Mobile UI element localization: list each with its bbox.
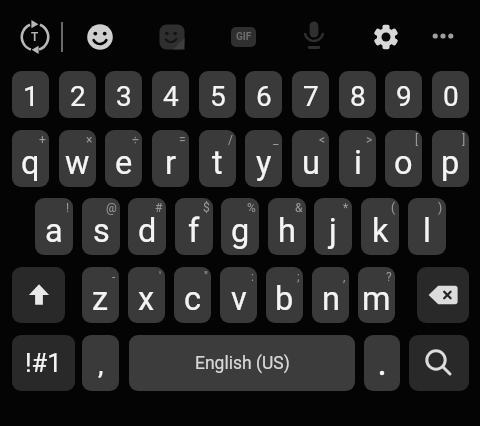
staticText: 3 [116, 80, 132, 113]
staticText: ; [297, 270, 300, 284]
staticText: n [322, 280, 340, 318]
staticText: l [423, 212, 431, 250]
button[interactable]: u [292, 130, 329, 187]
staticText: @ [106, 201, 117, 215]
staticText: f [188, 212, 200, 250]
button[interactable]: g [221, 198, 259, 255]
staticText: t [212, 144, 223, 182]
button[interactable] [80, 17, 120, 57]
staticText: / [228, 133, 233, 147]
button[interactable]: 6 [245, 71, 282, 118]
staticText: i [354, 144, 362, 182]
button[interactable] [366, 17, 406, 57]
button[interactable]: z [82, 267, 119, 323]
button[interactable]: r [152, 130, 189, 187]
staticText: m [362, 280, 391, 318]
button[interactable]: h [268, 198, 306, 255]
button[interactable]: n [312, 267, 349, 323]
button[interactable]: s [82, 198, 120, 255]
button[interactable] [417, 267, 469, 323]
button[interactable]: a [35, 198, 73, 255]
staticText: b [275, 280, 294, 318]
staticText: 8 [350, 80, 366, 113]
button[interactable]: m [358, 267, 395, 323]
staticText: e [115, 144, 133, 182]
staticText: x [138, 280, 155, 318]
staticText: ! [66, 201, 70, 215]
button[interactable]: y [245, 130, 282, 187]
button[interactable]: f [175, 198, 213, 255]
button[interactable]: p [432, 130, 469, 187]
staticText: > [366, 133, 373, 147]
staticText: 5 [210, 80, 226, 113]
button[interactable]: !#1 [12, 335, 75, 391]
staticText: p [441, 144, 460, 182]
button[interactable]: v [220, 267, 257, 323]
staticText: * [343, 201, 349, 215]
staticText: 6 [256, 80, 272, 113]
staticText: = [179, 133, 186, 147]
staticText: 4 [163, 80, 179, 113]
button[interactable]: 3 [105, 71, 142, 118]
button[interactable] [409, 335, 469, 391]
staticText: ÷ [132, 133, 139, 147]
button[interactable]: x [128, 267, 165, 323]
staticText: & [295, 201, 303, 215]
staticText: 0 [443, 80, 459, 113]
button[interactable]: , [82, 335, 119, 391]
staticText: English (US) [195, 353, 290, 374]
staticText: : [251, 270, 254, 284]
staticText: o [394, 144, 413, 182]
button[interactable]: b [266, 267, 303, 323]
button[interactable] [152, 17, 192, 57]
staticText: q [21, 144, 40, 182]
button[interactable] [423, 16, 463, 56]
staticText: _ [273, 133, 279, 147]
button[interactable] [12, 267, 65, 323]
button[interactable]: 5 [199, 71, 236, 118]
button[interactable]: 1 [12, 71, 49, 118]
button[interactable]: k [361, 198, 399, 255]
button[interactable]: i [339, 130, 376, 187]
staticText: ' [159, 270, 162, 284]
staticText: g [231, 212, 250, 250]
button[interactable]: 8 [339, 71, 376, 118]
staticText: [ [415, 133, 419, 147]
button[interactable]: j [314, 198, 352, 255]
button[interactable]: T [15, 17, 55, 57]
button[interactable]: 7 [292, 71, 329, 118]
staticText: < [319, 133, 326, 147]
button[interactable]: w [59, 130, 96, 187]
button[interactable]: o [385, 130, 422, 187]
button[interactable]: 9 [385, 71, 422, 118]
button[interactable]: l [408, 198, 446, 255]
staticText: y [256, 144, 272, 182]
button[interactable]: 2 [59, 71, 96, 118]
staticText: + [39, 133, 46, 147]
button[interactable]: e [105, 130, 142, 187]
button[interactable]: 4 [152, 71, 189, 118]
staticText: ( [391, 201, 396, 215]
button[interactable]: d [128, 198, 166, 255]
button[interactable]: t [199, 130, 236, 187]
button[interactable]: q [12, 130, 49, 187]
button[interactable]: c [174, 267, 211, 323]
staticText: 1 [23, 80, 39, 113]
button[interactable]: 0 [432, 71, 469, 118]
staticText: GIF [236, 31, 252, 43]
staticText: % [247, 201, 256, 215]
staticText: h [278, 212, 296, 250]
staticText: - [112, 270, 116, 284]
staticText: s [93, 212, 110, 250]
staticText: " [204, 270, 208, 284]
staticText: , [98, 348, 104, 381]
button[interactable]: English (US) [129, 335, 355, 391]
staticText: , [343, 270, 346, 284]
button[interactable]: GIF [223, 17, 263, 57]
staticText: !#1 [25, 348, 62, 378]
staticText: 9 [396, 80, 412, 113]
button[interactable] [294, 16, 334, 56]
button[interactable] [364, 335, 400, 391]
staticText: ] [462, 133, 466, 147]
staticText: × [86, 133, 93, 147]
